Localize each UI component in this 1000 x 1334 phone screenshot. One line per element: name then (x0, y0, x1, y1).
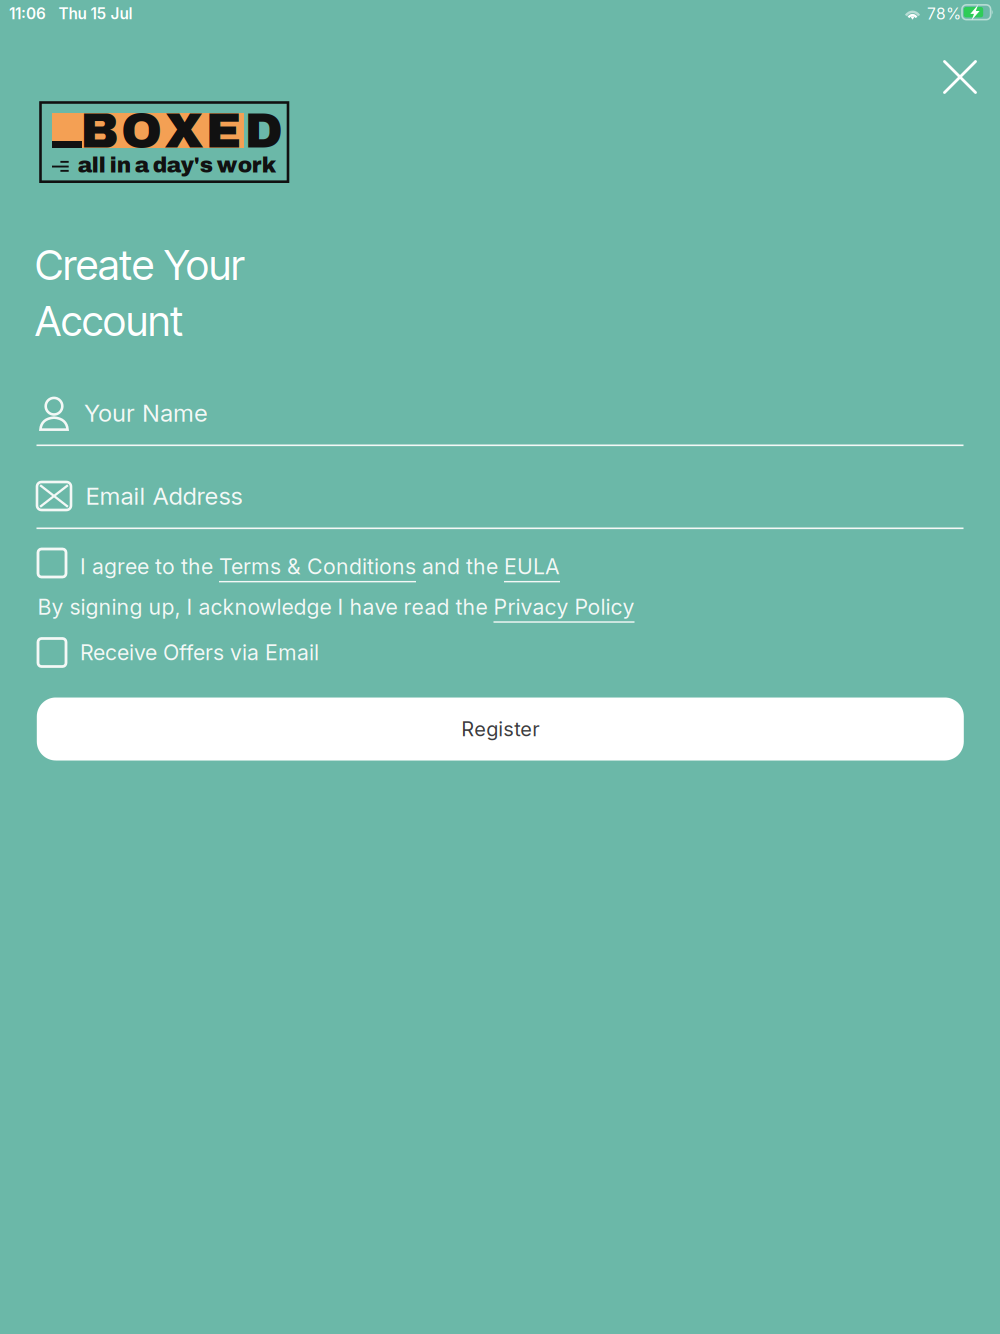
staticText: and the (416, 554, 504, 579)
staticText: Your Name (84, 398, 208, 427)
staticText: Privacy Policy (493, 594, 634, 620)
staticText: 78% (927, 4, 961, 23)
button[interactable]: Receive Offers via Email (38, 638, 965, 666)
staticText: I agree to the (80, 554, 219, 579)
staticText: O (121, 104, 162, 158)
staticText: EULA (504, 554, 560, 579)
staticText: B (80, 104, 118, 158)
staticText: Create Your (35, 240, 244, 290)
staticText: Email Address (85, 481, 242, 510)
button[interactable]: I agree to the (38, 549, 965, 577)
staticText: Terms & Conditions (219, 554, 416, 579)
staticText: D (244, 104, 282, 158)
staticText: Receive Offers via Email (80, 640, 319, 665)
button[interactable]: Close (930, 47, 990, 107)
staticText: Account (35, 296, 183, 346)
button[interactable]: Register (37, 697, 964, 760)
staticText: Thu 15 Jul (58, 4, 132, 23)
staticText: E (206, 104, 242, 158)
staticText: Register (461, 717, 539, 741)
staticText: all in a day's work (78, 153, 276, 177)
staticText: 11:06 (9, 4, 46, 23)
staticText: X (165, 104, 203, 158)
staticText: By signing up, I acknowledge I have read… (37, 594, 493, 620)
